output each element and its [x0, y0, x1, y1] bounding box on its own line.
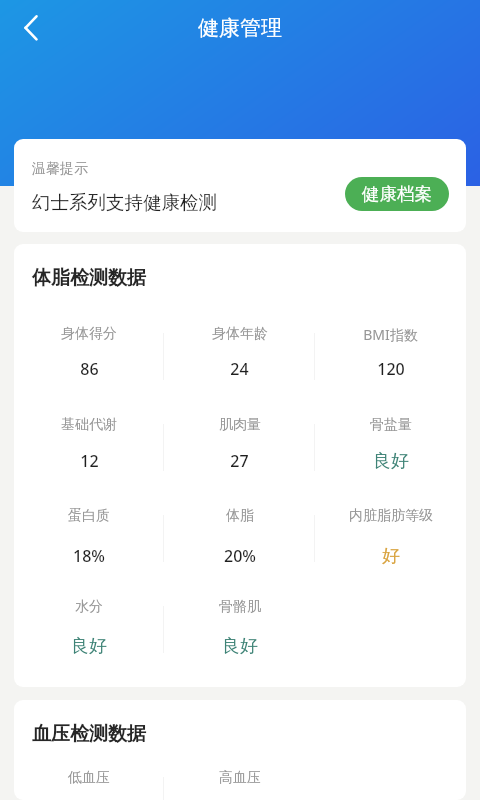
staticText: 蛋白质 — [68, 507, 110, 525]
staticText: 体脂检测数据 — [32, 266, 146, 290]
staticText: 86 — [80, 358, 99, 380]
staticText: 27 — [230, 450, 249, 472]
staticText: 血压检测数据 — [32, 722, 146, 746]
staticText: 幻士系列支持健康检测 — [32, 191, 217, 214]
staticText: 120 — [377, 358, 405, 380]
staticText: 肌肉量 — [219, 416, 261, 434]
staticText: 高血压 — [219, 769, 261, 787]
staticText: 身体年龄 — [212, 325, 268, 343]
staticText: 20% — [224, 545, 256, 567]
staticText: 骨骼肌 — [219, 598, 261, 616]
button[interactable]: Back — [0, 1, 50, 51]
staticText: 水分 — [75, 598, 103, 616]
staticText: 良好 — [373, 450, 409, 473]
staticText: 健康档案 — [362, 183, 432, 205]
staticText: 18% — [73, 545, 105, 567]
staticText: 身体得分 — [61, 325, 117, 343]
staticText: 12 — [80, 450, 99, 472]
staticText: 良好 — [222, 635, 258, 658]
button[interactable]: 健康档案 — [345, 177, 449, 211]
staticText: 体脂 — [226, 507, 254, 525]
staticText: 健康管理 — [198, 15, 282, 41]
staticText: 内脏脂肪等级 — [349, 507, 433, 525]
staticText: 骨盐量 — [370, 416, 412, 434]
staticText: 温馨提示 — [32, 160, 88, 178]
staticText: 低血压 — [68, 769, 110, 787]
staticText: 24 — [230, 358, 249, 380]
staticText: 良好 — [71, 635, 107, 658]
staticText: 基础代谢 — [61, 416, 117, 434]
staticText: 好 — [382, 545, 400, 568]
staticText: BMI指数 — [363, 325, 418, 344]
